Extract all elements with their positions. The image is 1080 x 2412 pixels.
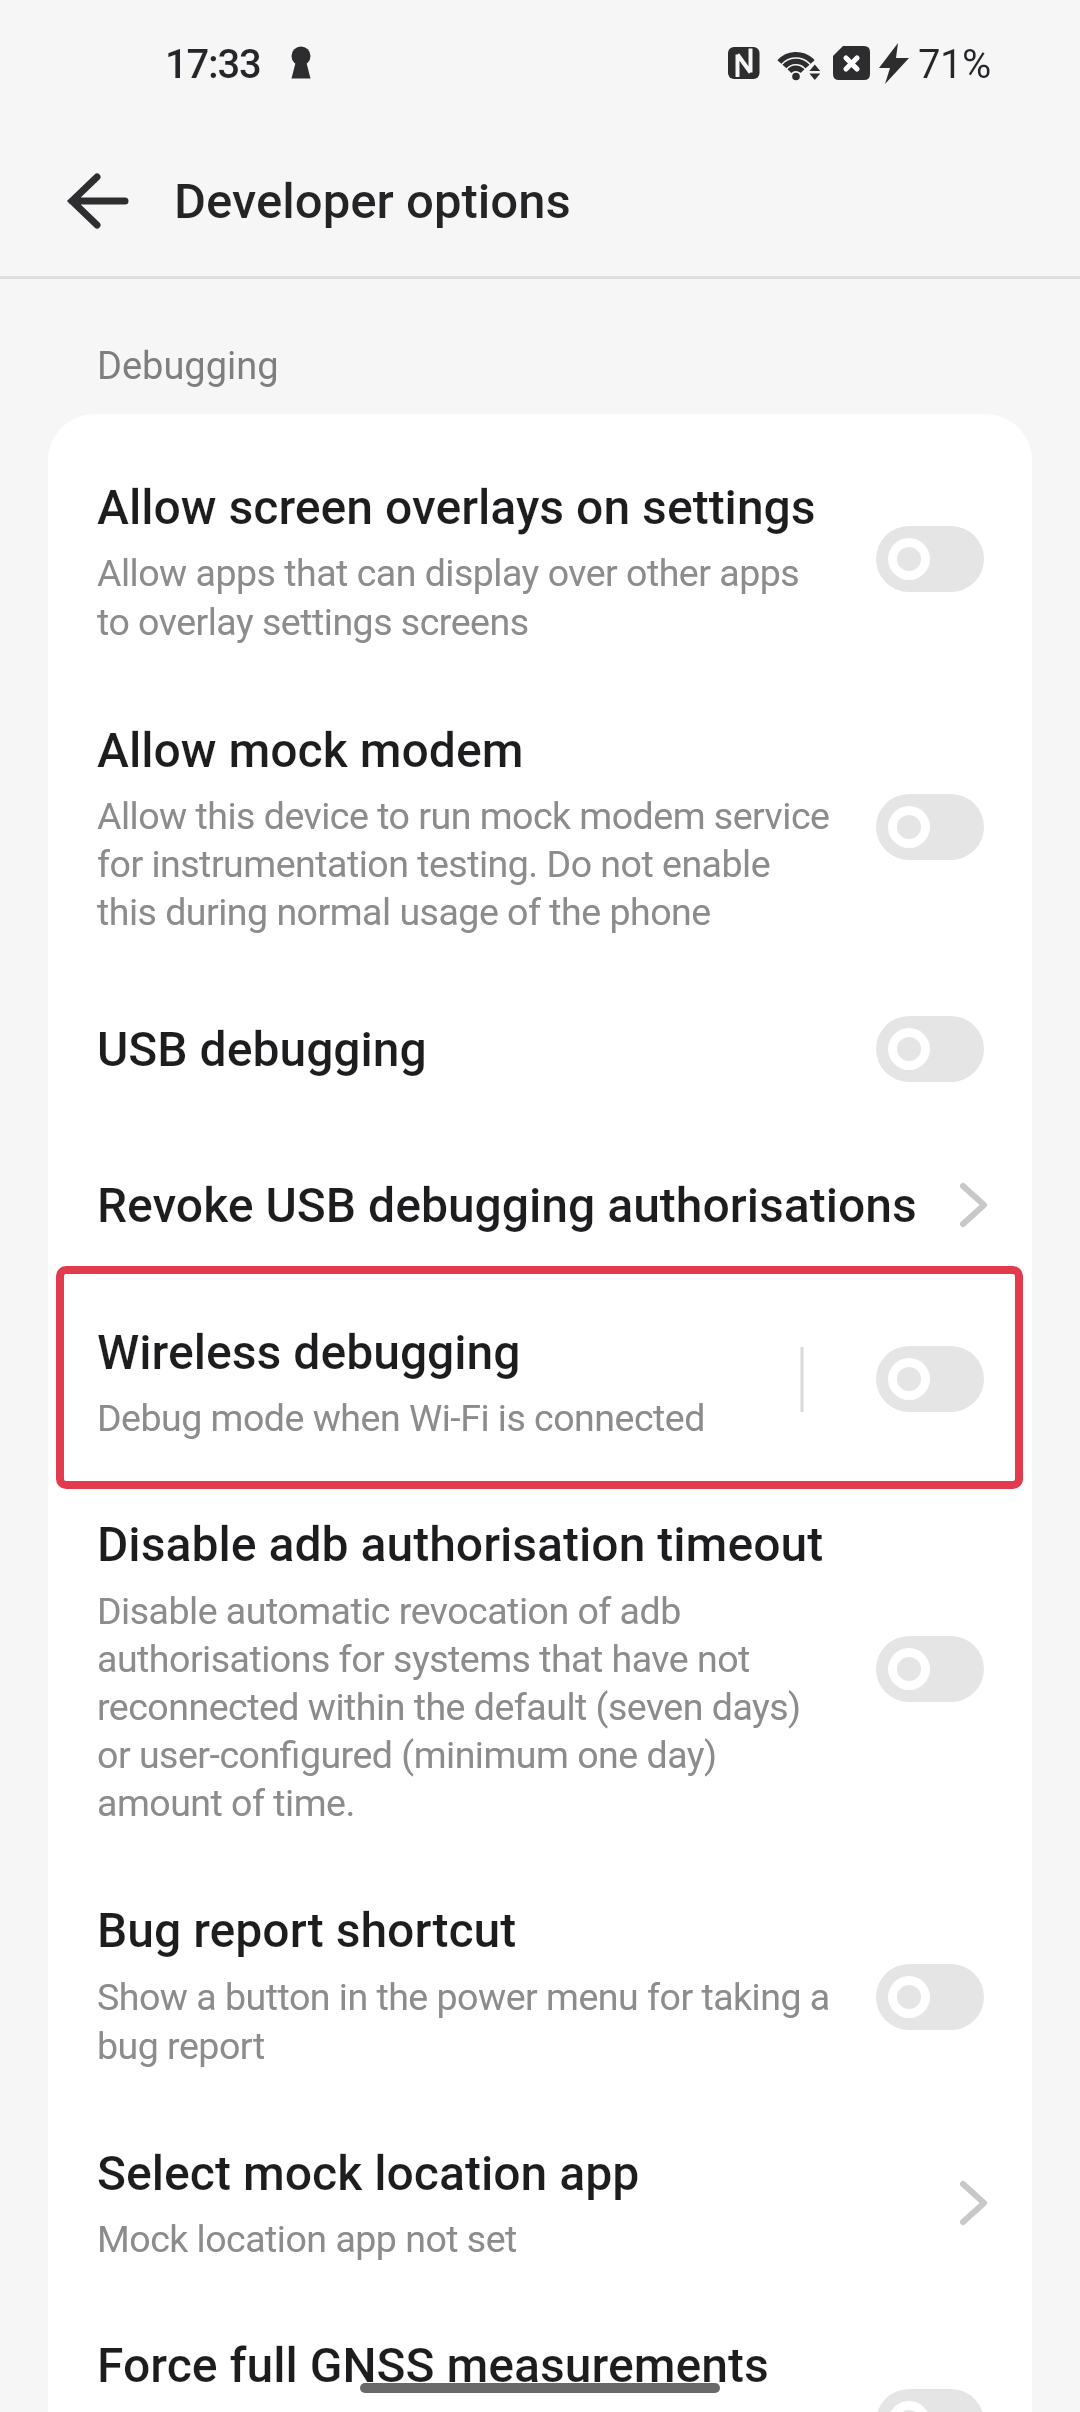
- button[interactable]: [876, 2389, 984, 2412]
- staticText: Debugging: [97, 344, 279, 389]
- staticText: Debug mode when Wi-Fi is connected: [97, 1396, 705, 1440]
- staticText: Allow mock modem: [97, 722, 524, 778]
- button[interactable]: [48, 455, 1032, 648]
- button[interactable]: [48, 2310, 1032, 2412]
- button[interactable]: [952, 1177, 992, 1233]
- button[interactable]: [48, 1140, 1032, 1268]
- staticText: Revoke USB debugging authorisations: [97, 1177, 917, 1233]
- staticText: Disable automatic revocation of adb: [97, 1589, 681, 1633]
- button[interactable]: [48, 700, 1032, 940]
- staticText: to overlay settings screens: [97, 600, 529, 644]
- staticText: authorisations for systems that have not: [97, 1637, 750, 1681]
- staticText: Select mock location app: [97, 2145, 640, 2201]
- staticText: this during normal usage of the phone: [97, 890, 711, 934]
- button[interactable]: [876, 1346, 984, 1412]
- staticText: Wireless debugging: [97, 1324, 521, 1380]
- button[interactable]: [876, 1964, 984, 2030]
- staticText: Developer options: [174, 173, 571, 230]
- button[interactable]: [952, 2175, 992, 2231]
- staticText: Force full GNSS measurements: [97, 2337, 769, 2393]
- button[interactable]: [876, 1636, 984, 1702]
- staticText: for instrumentation testing. Do not enab…: [97, 842, 771, 886]
- staticText: bug report: [97, 2024, 265, 2068]
- button[interactable]: [876, 1016, 984, 1082]
- staticText: 71%: [918, 41, 991, 88]
- staticText: amount of time.: [97, 1781, 355, 1825]
- button[interactable]: [48, 1882, 1032, 2100]
- staticText: Disable adb authorisation timeout: [97, 1516, 824, 1572]
- staticText: Allow this device to run mock modem serv…: [97, 794, 830, 838]
- button[interactable]: [48, 990, 1032, 1110]
- staticText: Allow screen overlays on settings: [97, 479, 816, 535]
- staticText: Show a button in the power menu for taki…: [97, 1975, 830, 2019]
- button[interactable]: [48, 1492, 1032, 1860]
- staticText: Allow apps that can display over other a…: [97, 551, 800, 595]
- button[interactable]: [48, 1292, 1032, 1462]
- button[interactable]: [48, 2120, 1032, 2292]
- button[interactable]: [876, 526, 984, 592]
- staticText: USB debugging: [97, 1021, 427, 1077]
- staticText: Mock location app not set: [97, 2217, 517, 2261]
- staticText: or user-configured (minimum one day): [97, 1733, 717, 1777]
- staticText: Bug report shortcut: [97, 1902, 517, 1958]
- button[interactable]: [876, 794, 984, 860]
- staticText: reconnected within the default (seven da…: [97, 1685, 801, 1729]
- staticText: 17:33: [165, 41, 261, 88]
